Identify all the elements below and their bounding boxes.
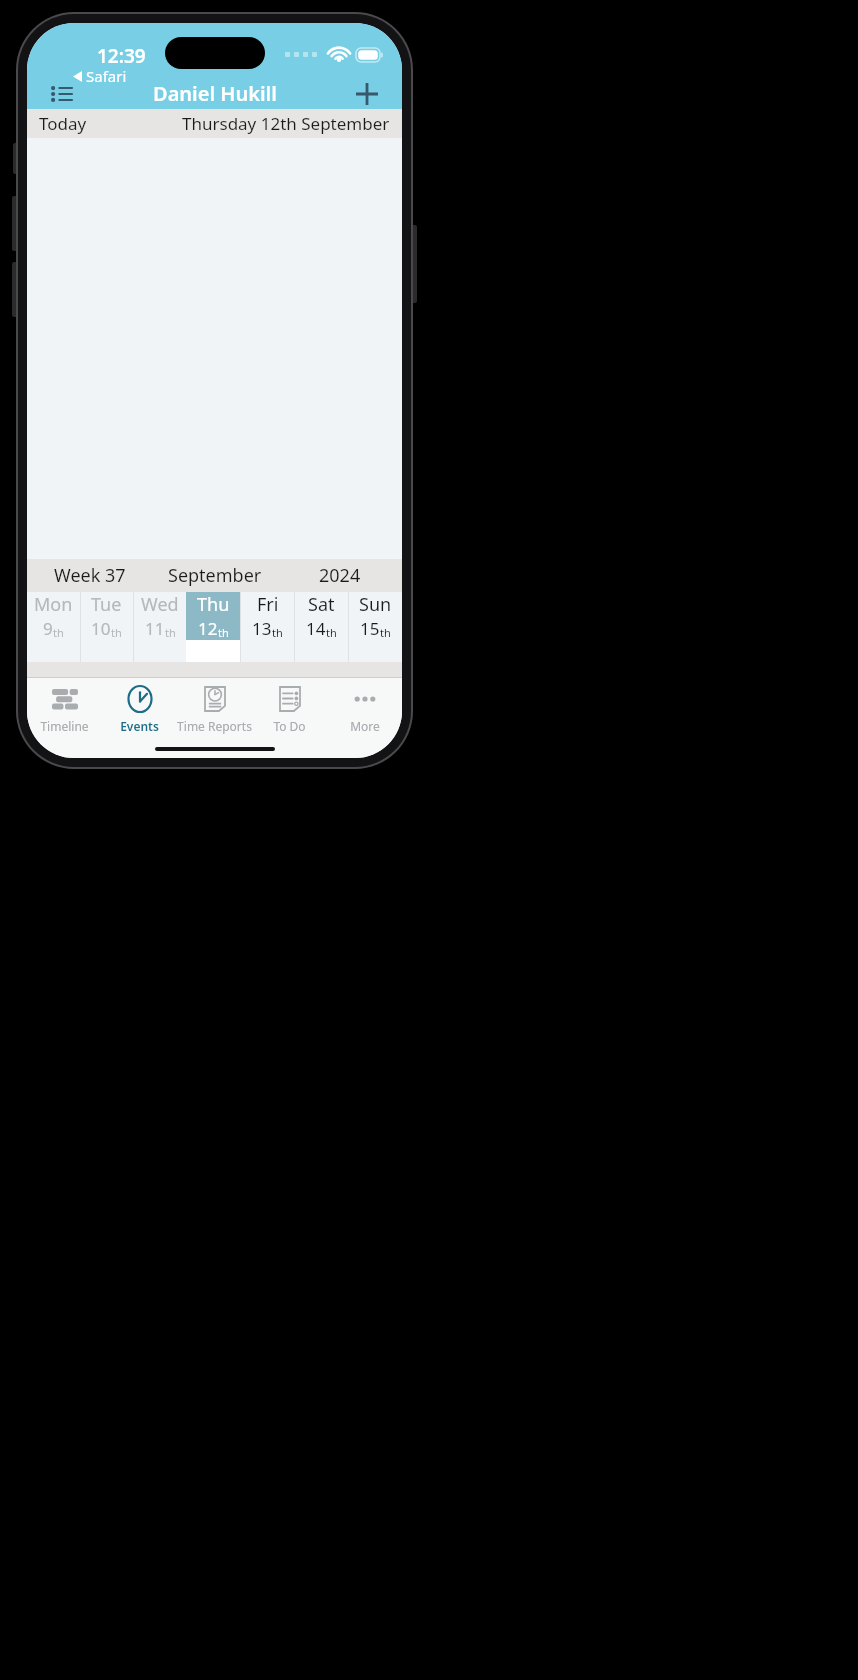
staticText: To Do	[273, 718, 306, 734]
staticText: Sun	[359, 592, 392, 617]
staticText: Thursday 12th September	[182, 112, 390, 135]
staticText: Mon	[34, 592, 73, 617]
staticText: 14	[306, 617, 326, 640]
staticText: Fri	[257, 592, 279, 617]
button[interactable]: Fri	[240, 592, 294, 662]
staticText: th	[326, 625, 337, 640]
staticText: Wed	[141, 592, 179, 617]
staticText: Events	[120, 718, 159, 734]
staticText: Timeline	[40, 718, 89, 734]
button[interactable]: Add	[345, 79, 389, 109]
staticText: Safari	[86, 66, 127, 86]
button[interactable]: Sun	[348, 592, 402, 662]
button[interactable]: Daniel Hukill	[153, 80, 277, 107]
staticText: 10	[91, 617, 111, 640]
staticText: Thu	[197, 592, 230, 617]
staticText: Tue	[91, 592, 122, 617]
staticText: Week 37	[54, 563, 126, 588]
button[interactable]: To Do	[252, 678, 327, 740]
staticText: 12	[198, 617, 218, 640]
staticText: th	[272, 625, 283, 640]
staticText: 11	[145, 617, 165, 640]
staticText: More	[350, 718, 380, 734]
button[interactable]: Menu	[39, 79, 83, 109]
staticText: th	[111, 625, 122, 640]
staticText: 13	[252, 617, 272, 640]
staticText: 9	[43, 617, 53, 640]
button[interactable]: Time Reports	[177, 678, 252, 740]
button[interactable]: Tue	[80, 592, 133, 662]
staticText: th	[218, 625, 229, 640]
button[interactable]: More	[327, 678, 402, 740]
staticText: 2024	[319, 563, 361, 588]
button[interactable]: Timeline	[27, 678, 102, 740]
button[interactable]: Mon	[27, 592, 80, 662]
staticText: 12:39	[97, 43, 146, 69]
button[interactable]: Events	[102, 678, 177, 740]
staticText: Sat	[308, 592, 335, 617]
staticText: Today	[39, 112, 87, 135]
staticText: 15	[360, 617, 380, 640]
staticText: September	[168, 563, 262, 588]
button[interactable]: Sat	[294, 592, 348, 662]
staticText: th	[165, 625, 176, 640]
staticText: th	[380, 625, 391, 640]
button[interactable]: Thu	[186, 592, 240, 662]
button[interactable]: Wed	[133, 592, 186, 662]
staticText: Time Reports	[177, 718, 252, 734]
staticText: th	[53, 625, 64, 640]
